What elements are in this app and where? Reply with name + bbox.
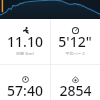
staticText: 57:40: [7, 81, 43, 100]
button[interactable]: Duration: [0, 74, 50, 100]
button[interactable]: Distance: [0, 25, 50, 55]
other: Duration: [22, 76, 29, 83]
staticText: 平均ペース: [65, 51, 86, 55]
staticText: 11.10: [7, 32, 43, 51]
button[interactable]: Elevation chart: [0, 0, 100, 19]
other: Distance: [22, 27, 29, 34]
staticText: 5'12": [58, 32, 92, 51]
staticText: 距離 (km): [16, 51, 34, 55]
other: Average pace: [72, 27, 79, 34]
other: Calories: [72, 76, 79, 83]
staticText: 2854: [59, 81, 92, 100]
button[interactable]: Calories: [50, 74, 100, 100]
button[interactable]: Average pace: [50, 25, 100, 55]
